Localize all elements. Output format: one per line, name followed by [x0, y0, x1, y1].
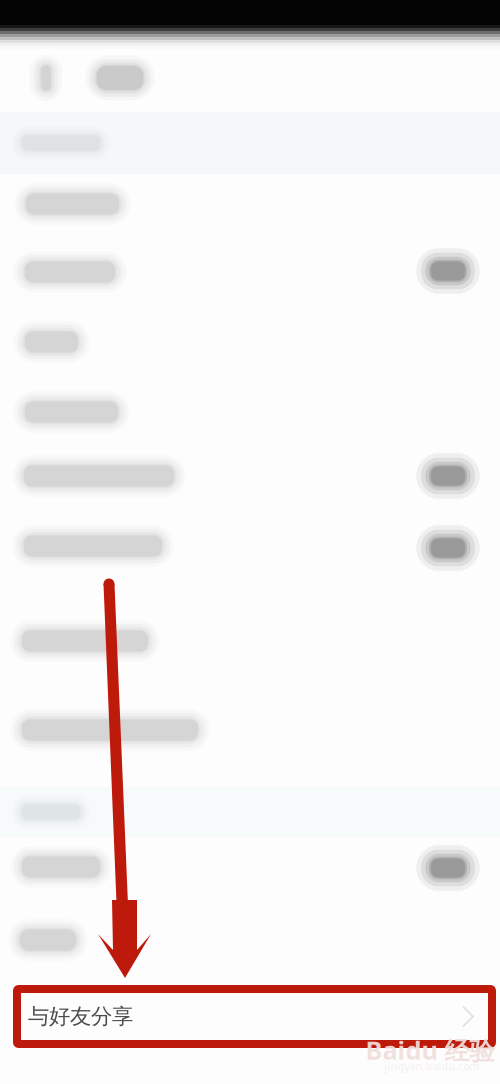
- button[interactable]: 与好友分享: [17, 989, 492, 1044]
- staticText: Baidu 经验: [365, 1033, 494, 1067]
- staticText: jingyan.baidu.com: [384, 1059, 479, 1073]
- staticText: 与好友分享: [28, 1003, 133, 1030]
